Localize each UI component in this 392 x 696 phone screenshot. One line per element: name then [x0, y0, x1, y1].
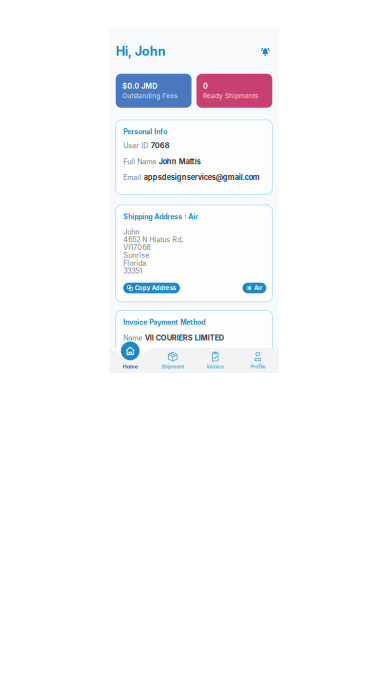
staticText: 0: [203, 82, 208, 90]
staticText: Invoice: [207, 363, 224, 370]
staticText: Shipment: [161, 363, 184, 370]
staticText: Email: [123, 173, 141, 182]
button[interactable]: Home: [109, 348, 151, 373]
staticText: Invoice Payment Method: [123, 318, 205, 326]
button[interactable]: Copy Address: [123, 283, 180, 293]
staticText: Profile: [250, 363, 265, 370]
staticText: Outstanding Fees: [122, 92, 177, 100]
staticText: Florida: [123, 259, 146, 267]
button[interactable]: Home: [121, 341, 140, 360]
staticText: 7068: [151, 141, 170, 150]
staticText: Sunrise: [123, 251, 149, 260]
button[interactable]: Profile: [236, 348, 279, 373]
staticText: 33351: [123, 266, 142, 275]
button[interactable]: Invoice: [194, 348, 236, 373]
staticText: VII COURIERS LIMITED: [145, 333, 224, 342]
button[interactable]: Air: [242, 283, 266, 293]
staticText: John: [123, 227, 139, 236]
staticText: Copy Address: [135, 284, 176, 292]
staticText: Full Name: [123, 157, 156, 166]
button[interactable]: Shipment: [151, 348, 194, 373]
staticText: $0.0 JMD: [122, 82, 157, 90]
staticText: Air: [254, 284, 262, 292]
staticText: Name: [123, 334, 142, 342]
button[interactable]: Notifications: [258, 44, 272, 58]
button[interactable]: 0: [196, 74, 272, 108]
staticText: Home: [123, 363, 138, 370]
staticText: Personal Info: [123, 127, 167, 136]
staticText: Hi, John: [116, 44, 166, 59]
staticText: 4652 N Hiatus Rd,: [123, 235, 183, 244]
staticText: Ready Shipments: [203, 92, 258, 100]
staticText: appsdesignservices@gmail.com: [144, 173, 260, 182]
staticText: VI17068: [123, 243, 150, 252]
staticText: Shipping Address : Air: [123, 212, 198, 221]
staticText: John Mattis: [159, 157, 201, 166]
staticText: User ID: [123, 141, 148, 150]
button[interactable]: $0.0 JMD: [116, 74, 191, 108]
